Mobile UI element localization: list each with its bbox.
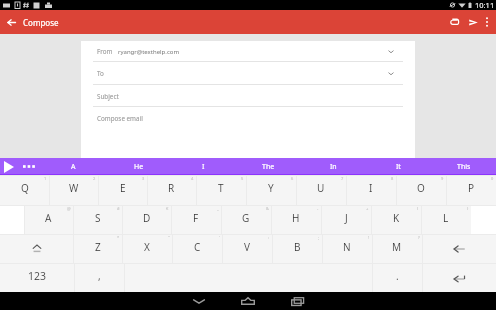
staticText: A [45,211,52,225]
staticText: S [95,211,101,225]
staticText: Compose email [97,114,143,123]
button[interactable]: Shift [0,234,73,263]
button[interactable]: G [221,205,271,234]
staticText: The [262,162,275,172]
button[interactable]: O [396,175,446,205]
staticText: 123 [28,269,47,283]
button[interactable]: Enter [422,263,496,292]
staticText: ! [368,235,370,240]
button[interactable]: E [98,175,147,205]
staticText: P [468,181,475,195]
button[interactable]: He [106,158,171,175]
button[interactable]: Send [469,10,478,34]
button[interactable]: B [272,234,322,263]
button[interactable]: A [24,205,73,234]
button[interactable]: More options [478,10,495,34]
staticText: It [396,162,401,172]
button[interactable]: T [196,175,246,205]
staticText: J [345,211,348,225]
staticText: M [392,240,402,254]
button[interactable]: Back [182,292,216,310]
button[interactable]: I [346,175,396,205]
staticText: V [244,240,250,254]
button[interactable]: V [222,234,272,263]
button[interactable]: Keyboard menu [17,158,41,175]
button[interactable]: Recent apps [280,292,314,310]
button[interactable]: Compose email [93,107,403,129]
staticText: L [443,211,449,225]
button[interactable]: The [236,158,301,175]
button[interactable]: R [147,175,196,205]
button[interactable]: 123 [0,263,74,292]
staticText: E [120,181,126,195]
staticText: € [166,206,169,211]
staticText: I [202,162,205,172]
staticText: A [71,162,76,172]
button[interactable]: A [41,158,106,175]
staticText: # [117,206,120,211]
staticText: N [343,240,351,254]
staticText: Y [268,181,274,195]
button[interactable]: L [421,205,471,234]
button[interactable]: Z [73,234,122,263]
button[interactable]: To [93,62,403,85]
button[interactable]: Y [246,175,296,205]
staticText: ryangr@texthelp.com [118,48,180,56]
staticText: Q [21,181,29,195]
staticText: T [218,181,224,195]
button[interactable]: W [49,175,98,205]
button[interactable]: In [301,158,366,175]
staticText: K [393,211,400,225]
button[interactable]: Back [0,10,22,34]
button[interactable]: Subject [93,85,403,107]
staticText: ' [219,235,220,240]
staticText: C [194,240,201,254]
button[interactable]: Attach file [443,10,465,34]
button[interactable]: Play [0,158,17,175]
button[interactable]: J [321,205,371,234]
button[interactable]: . [372,263,422,292]
button[interactable]: I [171,158,236,175]
staticText: @ [67,206,71,211]
button[interactable]: P [446,175,496,205]
staticText: W [69,181,79,195]
staticText: & [266,206,269,211]
button[interactable]: Q [0,175,49,205]
button[interactable]: Home [231,292,265,310]
staticText: D [143,211,151,225]
staticText: U [317,181,325,195]
button[interactable]: H [271,205,321,234]
staticText: " [168,235,170,240]
button[interactable]: D [122,205,171,234]
staticText: 7 [341,176,344,181]
button[interactable]: F [171,205,221,234]
button[interactable]: S [73,205,122,234]
staticText: * [117,235,120,240]
staticText: _ [217,206,219,211]
staticText: He [134,162,144,172]
button[interactable]: X [122,234,172,263]
staticText: 8 [391,176,394,181]
button[interactable]: U [296,175,346,205]
button[interactable]: M [372,234,422,263]
staticText: ; [318,235,320,240]
button[interactable]: C [172,234,222,263]
staticText: + [366,206,369,211]
button[interactable]: , [74,263,124,292]
button[interactable]: This [431,158,496,175]
button[interactable]: N [322,234,372,263]
staticText: 0 [491,176,494,181]
button[interactable]: K [371,205,421,234]
staticText: - [317,206,319,211]
staticText: G [242,211,250,225]
button[interactable]: Backspace [422,234,496,263]
staticText: R [168,181,175,195]
staticText: O [417,181,425,195]
staticText: , [98,269,101,283]
button[interactable]: It [366,158,431,175]
staticText: To [97,69,104,78]
button[interactable]: From [93,41,403,62]
staticText: H [292,211,300,225]
staticText: In [330,162,337,172]
